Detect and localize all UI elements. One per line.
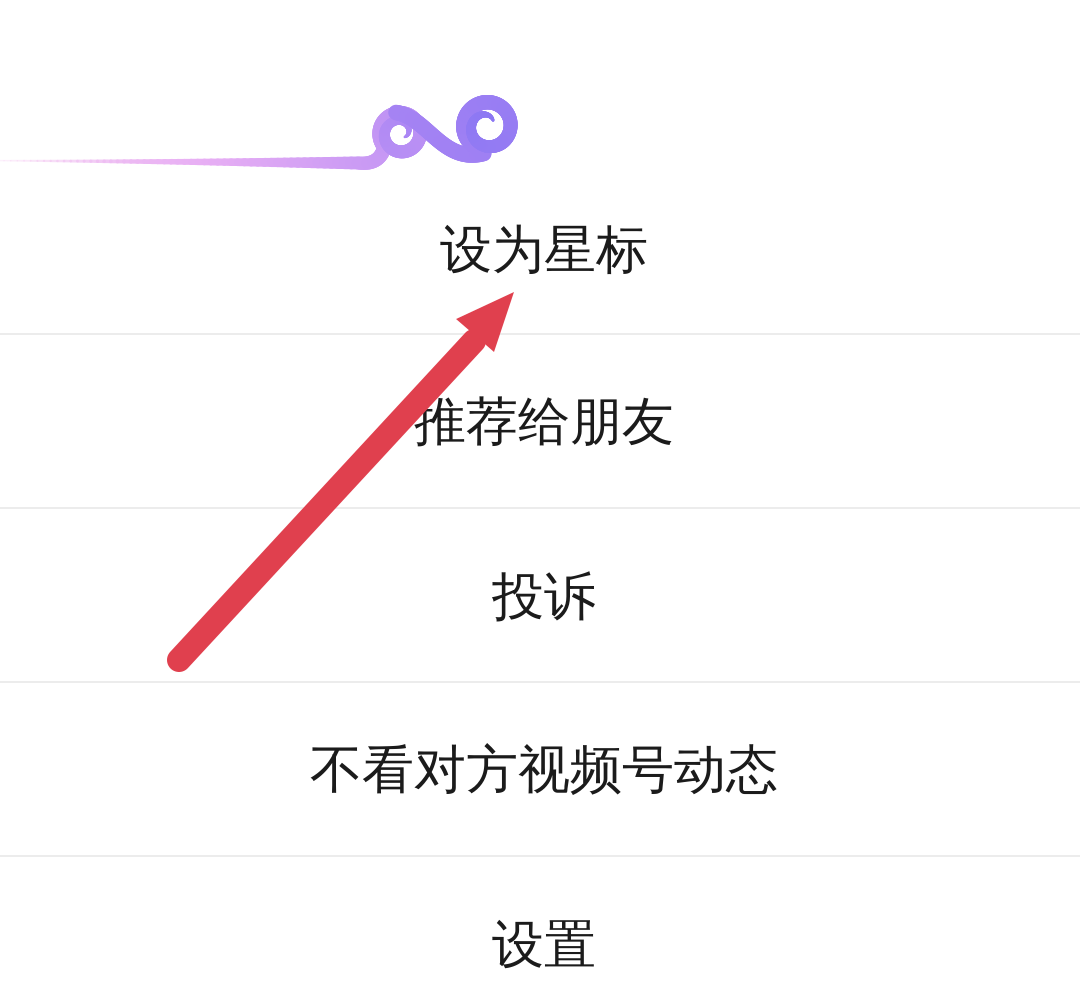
- staticText: 设为星标: [440, 218, 648, 282]
- button[interactable]: 设为星标: [4, 164, 1080, 336]
- staticText: 投诉: [492, 565, 596, 629]
- staticText: 不看对方视频号动态: [310, 738, 778, 802]
- button[interactable]: 不看对方视频号动态: [4, 684, 1080, 856]
- staticText: 设置: [492, 913, 596, 977]
- staticText: 推荐给朋友: [414, 390, 674, 454]
- button[interactable]: 推荐给朋友: [4, 336, 1080, 508]
- button[interactable]: 投诉: [4, 511, 1080, 683]
- button[interactable]: 设置: [4, 859, 1080, 1006]
